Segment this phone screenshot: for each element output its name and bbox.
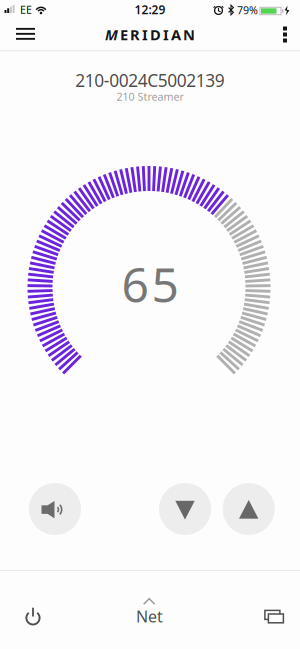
button[interactable]: Volume up [223, 483, 275, 535]
button[interactable]: Mute [29, 483, 81, 535]
staticText: Net [136, 606, 163, 627]
button[interactable]: Net [117, 584, 183, 640]
button[interactable]: Volume down [159, 483, 211, 535]
button[interactable]: More options [259, 20, 300, 51]
button[interactable]: Zones [246, 588, 300, 644]
staticText: MERIDIAN [105, 25, 195, 44]
staticText: 12:29 [134, 2, 165, 18]
staticText: EE [20, 3, 32, 17]
staticText: 79% [237, 3, 258, 17]
button[interactable]: Power [5, 589, 61, 645]
staticText: 210 Streamer [116, 89, 183, 104]
button[interactable]: Meridian [105, 25, 195, 44]
button[interactable]: Menu [4, 20, 48, 51]
staticText: 65 [121, 252, 178, 316]
staticText: 210-0024C5002139 [75, 69, 225, 92]
